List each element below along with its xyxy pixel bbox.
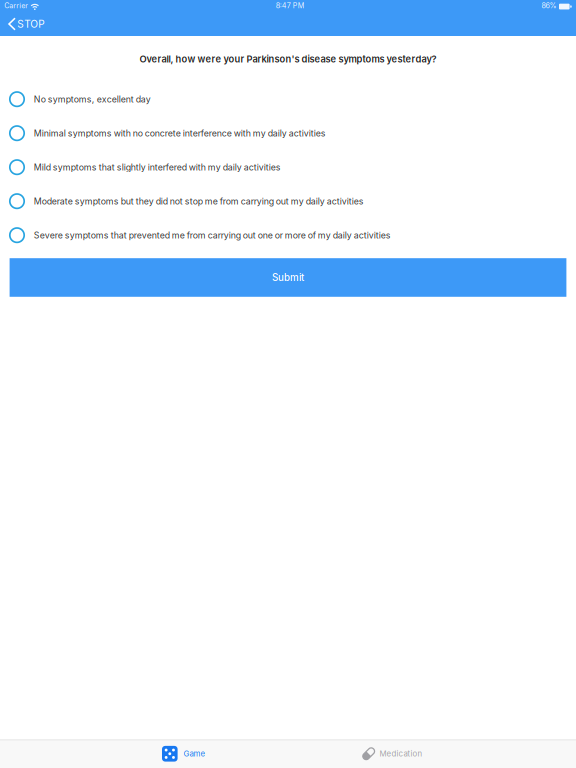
staticText: No symptoms, excellent day <box>34 94 151 104</box>
staticText: Overall, how were your Parkinson's disea… <box>139 53 436 65</box>
button[interactable]: STOP <box>0 12 54 36</box>
button[interactable]: No symptoms, excellent day <box>0 82 576 116</box>
staticText: 86% <box>541 1 556 10</box>
staticText: Minimal symptoms with no concrete interf… <box>34 128 326 138</box>
button[interactable]: Minimal symptoms with no concrete interf… <box>0 116 576 150</box>
staticText: Carrier <box>4 1 28 10</box>
staticText: STOP <box>17 18 44 30</box>
button[interactable]: Severe symptoms that prevented me from c… <box>0 218 576 252</box>
staticText: Submit <box>272 272 304 283</box>
staticText: Moderate symptoms but they did not stop … <box>34 196 364 206</box>
button[interactable]: Submit <box>10 258 566 297</box>
button[interactable]: Game <box>162 739 205 768</box>
staticText: Mild symptoms that slightly interfered w… <box>34 162 281 172</box>
staticText: Medication <box>379 749 422 758</box>
button[interactable]: Moderate symptoms but they did not stop … <box>0 184 576 218</box>
button[interactable]: Medication <box>362 739 422 768</box>
staticText: Game <box>183 749 205 758</box>
button[interactable]: Mild symptoms that slightly interfered w… <box>0 150 576 184</box>
staticText: 8:47 PM <box>276 1 305 10</box>
staticText: Severe symptoms that prevented me from c… <box>34 230 391 240</box>
